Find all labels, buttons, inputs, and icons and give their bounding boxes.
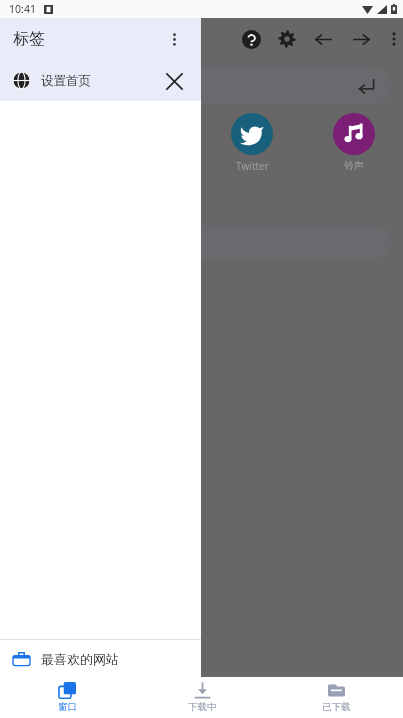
button[interactable]: Back [310,26,336,52]
staticText: 下载中 [188,701,217,713]
button[interactable]: 铃声 [333,113,375,172]
button[interactable]: New tab [151,678,201,718]
staticText: 窗口 [58,701,77,713]
staticText: 铃声 [344,159,364,172]
staticText: 最喜欢的网站 [41,651,119,667]
button[interactable]: 下载中 [135,677,269,718]
staticText: 设置首页 [41,73,91,89]
staticText: 已下载 [322,701,351,713]
staticText: Twitter [236,159,269,173]
button[interactable]: Home [51,678,101,718]
button[interactable]: Twitter [231,113,273,173]
button[interactable]: 已下载 [269,677,403,718]
button[interactable]: 最喜欢的网站 [0,640,201,678]
button[interactable]: Forward [348,26,374,52]
button[interactable]: More options [384,26,403,52]
staticText: 10:41 [9,2,36,16]
staticText: 标签 [13,29,45,49]
button[interactable]: 窗口 [0,677,135,718]
button[interactable]: Settings [274,26,300,52]
button[interactable]: 设置首页 [0,60,201,101]
button[interactable]: Help [238,26,264,52]
button[interactable]: Close [161,68,187,94]
button[interactable]: Tab options [161,26,187,52]
